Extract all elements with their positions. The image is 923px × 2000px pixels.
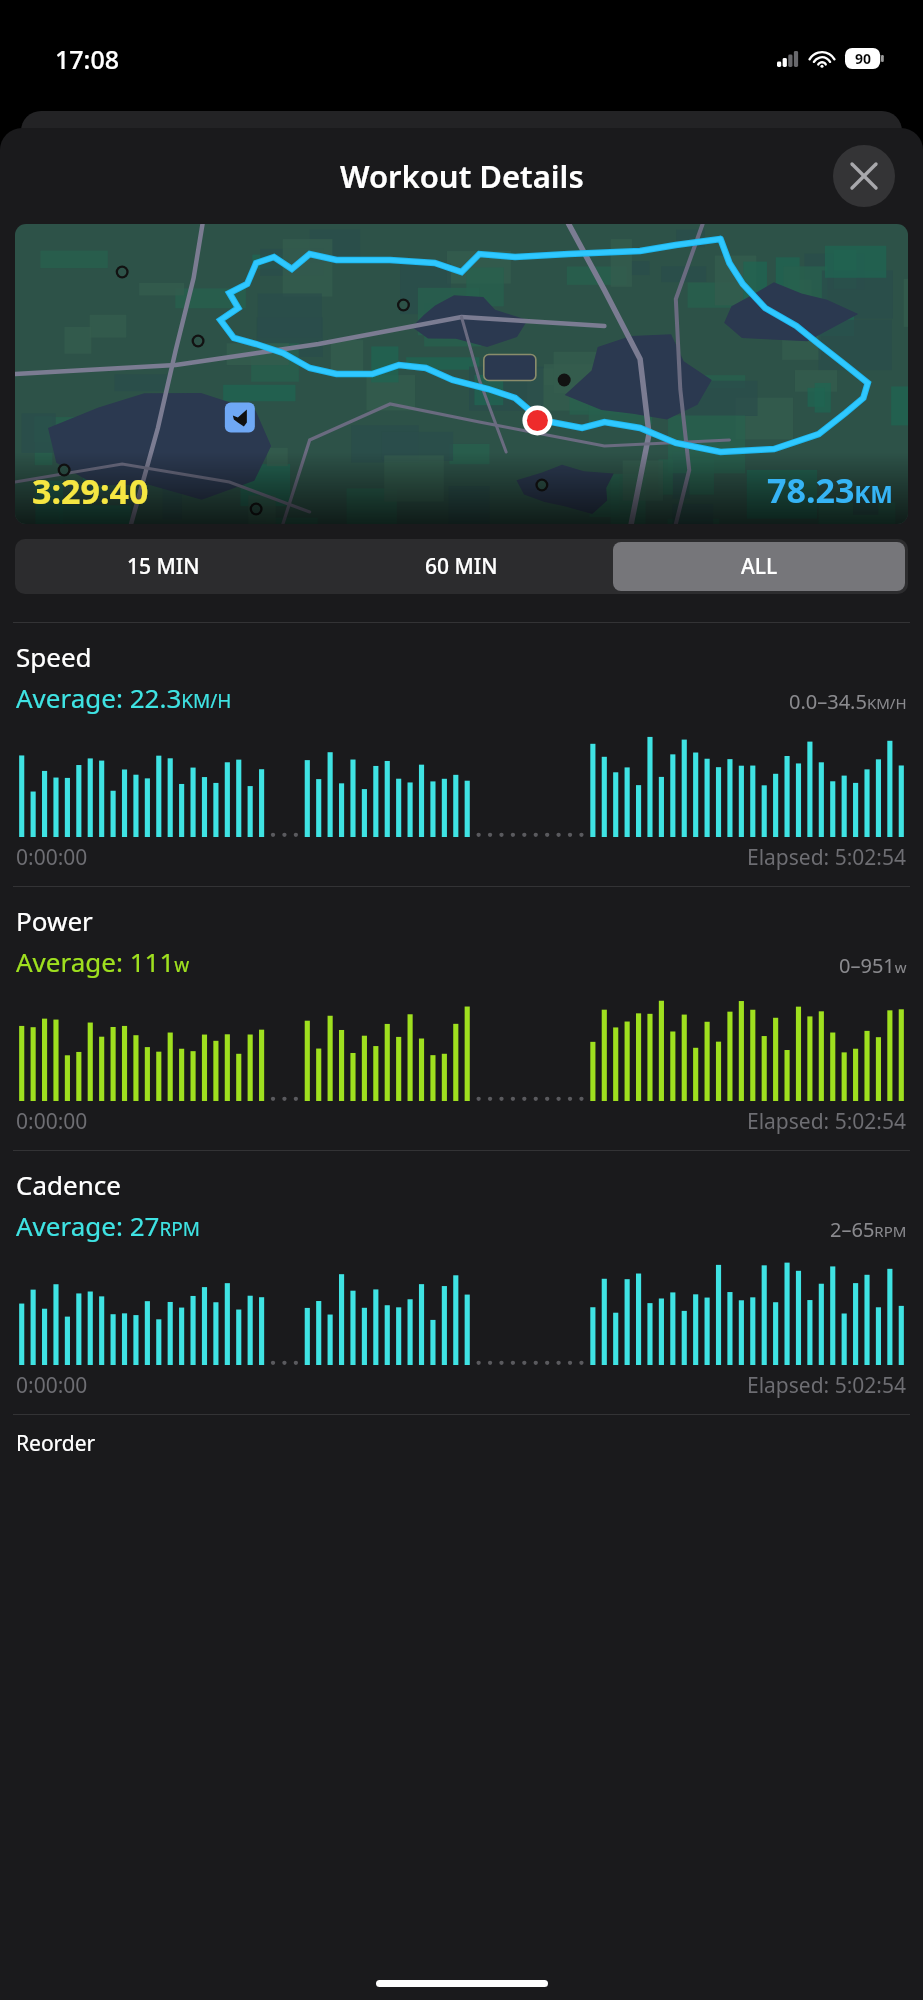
staticText: 0–951w — [839, 952, 907, 979]
staticText: Speed — [16, 639, 92, 674]
button[interactable]: Close — [833, 145, 895, 207]
staticText: 0.0–34.5KM/H — [789, 688, 907, 715]
staticText: Cadence — [16, 1167, 121, 1202]
staticText: 3:29:40 — [32, 468, 149, 514]
staticText: Reorder — [16, 1429, 96, 1458]
staticText: 90 — [855, 49, 872, 68]
staticText: ALL — [741, 552, 778, 581]
staticText: Elapsed: 5:02:54 — [747, 1107, 907, 1136]
staticText: 0:00:00 — [16, 843, 88, 872]
staticText: 78.23KM — [767, 467, 893, 513]
staticText: 17:08 — [55, 42, 120, 76]
staticText: Elapsed: 5:02:54 — [747, 843, 907, 872]
staticText: Average: 27RPM — [16, 1208, 200, 1243]
staticText: Elapsed: 5:02:54 — [747, 1371, 907, 1400]
staticText: 0:00:00 — [16, 1371, 88, 1400]
staticText: Workout Details — [340, 155, 584, 197]
staticText: Power — [16, 903, 93, 938]
staticText: Average: 22.3KM/H — [16, 680, 232, 715]
staticText: 60 MIN — [425, 552, 498, 581]
button[interactable]: 60 MIN — [315, 542, 607, 591]
button[interactable]: 15 MIN — [18, 542, 309, 591]
staticText: Average: 111w — [16, 944, 190, 979]
staticText: 15 MIN — [127, 552, 200, 581]
button[interactable]: Route map — [15, 224, 908, 524]
staticText: 0:00:00 — [16, 1107, 88, 1136]
button[interactable]: ALL — [613, 542, 905, 591]
staticText: 2–65RPM — [830, 1216, 907, 1243]
